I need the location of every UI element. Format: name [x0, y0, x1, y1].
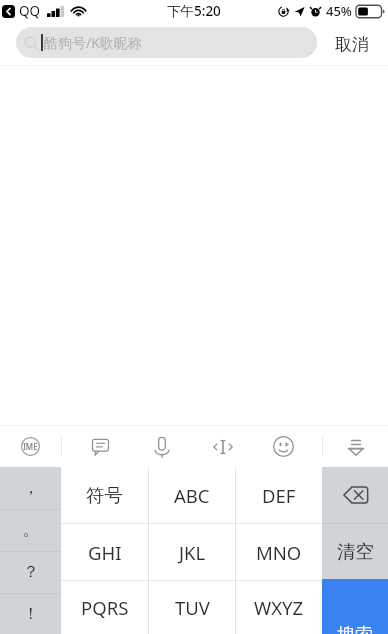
- staticText: PQRS: [81, 595, 129, 620]
- button[interactable]: 清空: [322, 524, 388, 579]
- button[interactable]: ！: [0, 593, 61, 634]
- button[interactable]: GHI: [61, 524, 148, 580]
- staticText: 45%: [326, 2, 352, 20]
- staticText: GHI: [88, 540, 122, 565]
- button[interactable]: DEF: [236, 467, 322, 523]
- staticText: 酷狗号/K歌昵称: [44, 33, 142, 52]
- staticText: 清空: [337, 540, 374, 563]
- staticText: QQ: [19, 2, 41, 20]
- staticText: 搜索: [337, 624, 373, 634]
- button[interactable]: Input method: [0, 426, 61, 467]
- button[interactable]: Emoji: [251, 426, 316, 467]
- button[interactable]: Backspace: [322, 467, 388, 523]
- button[interactable]: 。: [0, 509, 61, 551]
- button[interactable]: Voice input: [129, 426, 194, 467]
- button[interactable]: Search field: [16, 27, 317, 58]
- button[interactable]: ？: [0, 551, 61, 593]
- staticText: 下午5:20: [167, 2, 221, 20]
- staticText: JKL: [179, 540, 206, 565]
- button[interactable]: ABC: [149, 467, 235, 523]
- button[interactable]: JKL: [149, 524, 235, 580]
- button[interactable]: 搜索: [322, 579, 388, 634]
- button[interactable]: ，: [0, 467, 61, 509]
- staticText: TUV: [175, 595, 210, 620]
- staticText: 。: [23, 520, 39, 540]
- staticText: WXYZ: [254, 595, 304, 620]
- button[interactable]: Back to QQ: [2, 5, 15, 18]
- staticText: ，: [23, 478, 39, 498]
- button[interactable]: TUV: [149, 581, 235, 634]
- button[interactable]: Move cursor: [190, 426, 255, 467]
- button[interactable]: PQRS: [61, 581, 148, 634]
- button[interactable]: 取消: [326, 22, 378, 66]
- button[interactable]: Hide keyboard: [323, 426, 388, 467]
- button[interactable]: 符号: [61, 467, 148, 523]
- staticText: ABC: [174, 483, 210, 508]
- button[interactable]: MNO: [236, 524, 322, 580]
- staticText: MNO: [256, 540, 302, 565]
- staticText: DEF: [262, 483, 296, 508]
- staticText: 符号: [86, 484, 123, 507]
- staticText: ？: [23, 562, 39, 582]
- staticText: 取消: [335, 34, 369, 55]
- button[interactable]: Messages: [68, 426, 133, 467]
- button[interactable]: WXYZ: [236, 581, 322, 634]
- staticText: IME: [23, 441, 38, 452]
- staticText: ！: [23, 604, 39, 624]
